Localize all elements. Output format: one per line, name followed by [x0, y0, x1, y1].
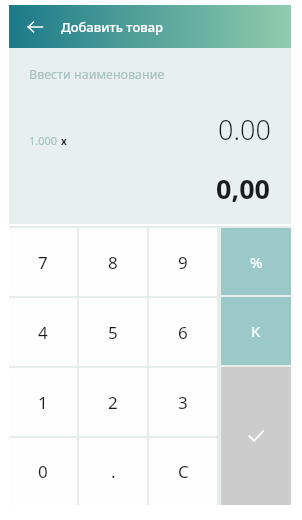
staticText: Добавить товар — [61, 18, 164, 36]
button[interactable]: C — [149, 438, 217, 505]
staticText: 0.00 — [218, 111, 271, 148]
staticText: 7 — [38, 251, 48, 274]
staticText: 1.000 — [29, 133, 58, 148]
staticText: 0,00 — [216, 170, 271, 207]
staticText: % — [250, 252, 263, 272]
staticText: 6 — [178, 321, 188, 344]
staticText: 9 — [178, 251, 188, 274]
button[interactable]: K — [221, 297, 291, 365]
staticText: x — [61, 134, 67, 148]
button[interactable]: . — [79, 438, 147, 505]
staticText: Ввести наименование — [29, 66, 165, 83]
button[interactable]: 2 — [79, 368, 147, 436]
button[interactable]: 6 — [149, 298, 217, 366]
staticText: K — [251, 321, 261, 341]
button[interactable]: 7 — [9, 228, 77, 296]
staticText: 8 — [108, 251, 118, 274]
staticText: 5 — [108, 321, 118, 344]
staticText: 4 — [38, 321, 48, 344]
button[interactable]: 8 — [79, 228, 147, 296]
staticText: C — [178, 460, 189, 483]
button[interactable]: Back — [17, 9, 53, 45]
button[interactable]: % — [221, 228, 291, 295]
staticText: 0 — [38, 460, 48, 483]
button[interactable]: 9 — [149, 228, 217, 296]
button[interactable]: 0 — [9, 438, 77, 505]
button[interactable]: 4 — [9, 298, 77, 366]
button[interactable]: Ввести наименование — [29, 66, 271, 83]
staticText: . — [111, 460, 116, 483]
staticText: 1 — [38, 391, 48, 414]
staticText: 2 — [108, 391, 118, 414]
button[interactable]: 5 — [79, 298, 147, 366]
staticText: 3 — [178, 391, 188, 414]
button[interactable]: 1 — [9, 368, 77, 436]
button[interactable]: 3 — [149, 368, 217, 436]
